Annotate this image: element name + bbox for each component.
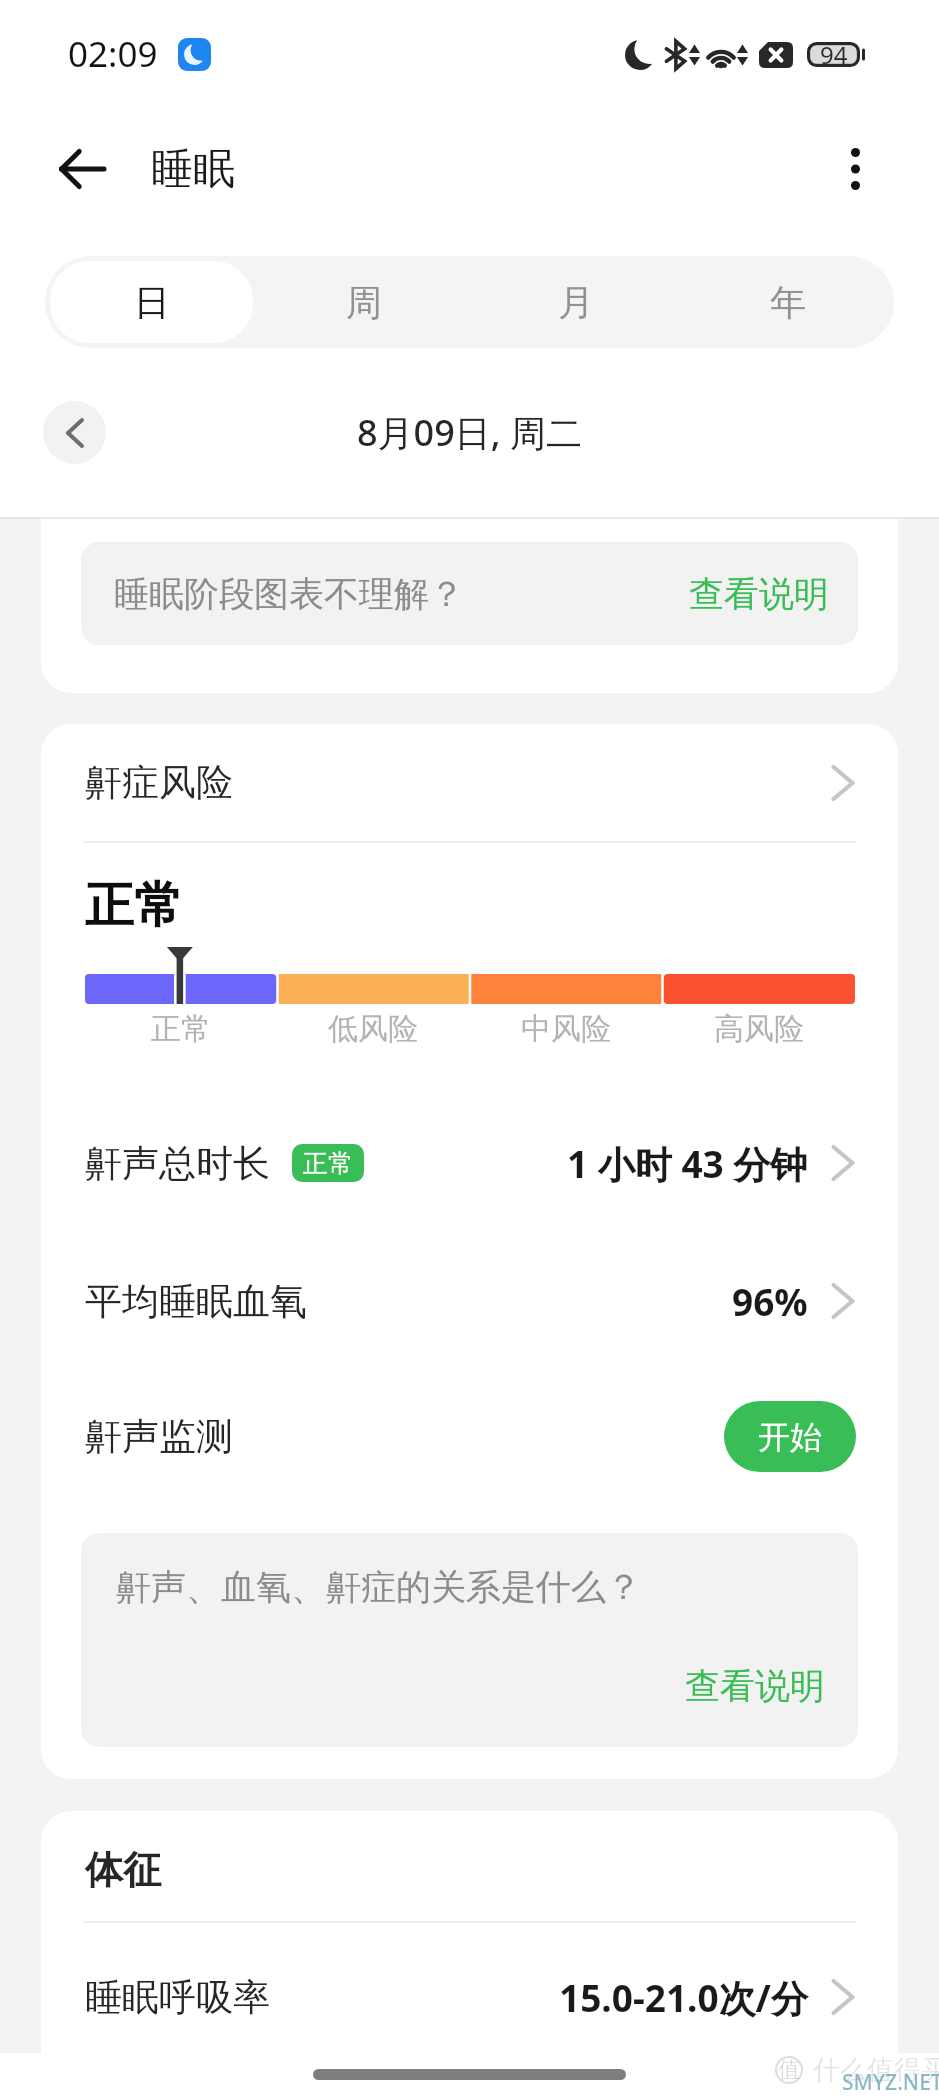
button[interactable]: 鼾症风险 [41,724,898,841]
staticText: 睡眠呼吸率 [85,1974,270,2021]
staticText: 值 [778,2056,800,2084]
button[interactable]: More options [813,127,897,211]
staticText: 正常 [85,875,898,937]
staticText: 周 [346,280,382,325]
staticText: 鼾声监测 [85,1413,233,1460]
staticText: 正常 [151,1010,211,1048]
button[interactable]: 平均睡眠血氧 [41,1268,898,1334]
button[interactable]: 睡眠阶段图表不理解？ [81,542,858,645]
staticText: 低风险 [328,1010,418,1048]
button[interactable]: Back [40,127,124,211]
staticText: 8月09日, 周二 [357,408,582,457]
staticText: 睡眠 [151,143,235,196]
button[interactable]: 周 [258,256,470,348]
staticText: 体征 [85,1846,161,1894]
staticText: SMYZ.NET [842,2068,939,2097]
staticText: 1 小时 43 分钟 [567,1138,808,1189]
staticText: 平均睡眠血氧 [85,1278,307,1325]
staticText: 96% [732,1276,808,1326]
button[interactable]: 年 [682,256,894,348]
staticText: 睡眠阶段图表不理解？ [114,572,464,616]
button[interactable]: Previous day [43,401,106,464]
staticText: 日 [134,280,170,325]
staticText: 年 [770,280,806,325]
button[interactable]: 日 [45,256,258,348]
staticText: 月 [558,280,594,325]
button[interactable]: 月 [470,256,682,348]
staticText: 鼾声总时长 [85,1140,270,1187]
staticText: 鼾声、血氧、鼾症的关系是什么？ [116,1565,641,1609]
button[interactable]: 鼾声总时长 [41,1130,898,1196]
staticText: 94 [820,38,848,71]
staticText: 正常 [303,1148,353,1179]
staticText: 02:09 [68,30,158,78]
staticText: 中风险 [521,1010,611,1048]
staticText: 查看说明 [685,1664,825,1708]
button[interactable]: 开始 [724,1401,856,1472]
staticText: 什么值得买 [813,2053,939,2087]
button[interactable]: 睡眠呼吸率 [41,1964,898,2030]
staticText: 开始 [758,1417,822,1457]
staticText: 鼾症风险 [85,759,233,806]
button[interactable]: 鼾声、血氧、鼾症的关系是什么？ [81,1533,858,1747]
staticText: 高风险 [714,1010,804,1048]
staticText: 15.0-21.0次/分 [559,1972,808,2023]
staticText: 查看说明 [689,572,829,616]
